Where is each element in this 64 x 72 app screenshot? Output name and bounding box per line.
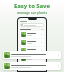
button[interactable]: Open item <box>20 39 44 46</box>
staticText: Easy to Save <box>0 2 64 10</box>
staticText: manage our plants <box>0 11 64 15</box>
other: Open item <box>57 54 60 57</box>
button[interactable]: Open item <box>20 55 44 62</box>
other: Open item <box>40 65 43 68</box>
button[interactable]: Open item <box>20 47 44 54</box>
other: Open item <box>57 65 60 68</box>
button[interactable]: Open item <box>3 62 61 70</box>
other: Search <box>21 24 23 26</box>
other: Open item <box>40 49 43 52</box>
other: Open item <box>40 57 43 60</box>
button[interactable]: Open item <box>3 51 61 59</box>
other: Open item <box>40 33 43 36</box>
button[interactable]: Search <box>20 23 44 27</box>
other: Open item <box>40 41 43 44</box>
button[interactable]: Open item <box>20 31 44 38</box>
button[interactable]: Open item <box>20 63 44 70</box>
